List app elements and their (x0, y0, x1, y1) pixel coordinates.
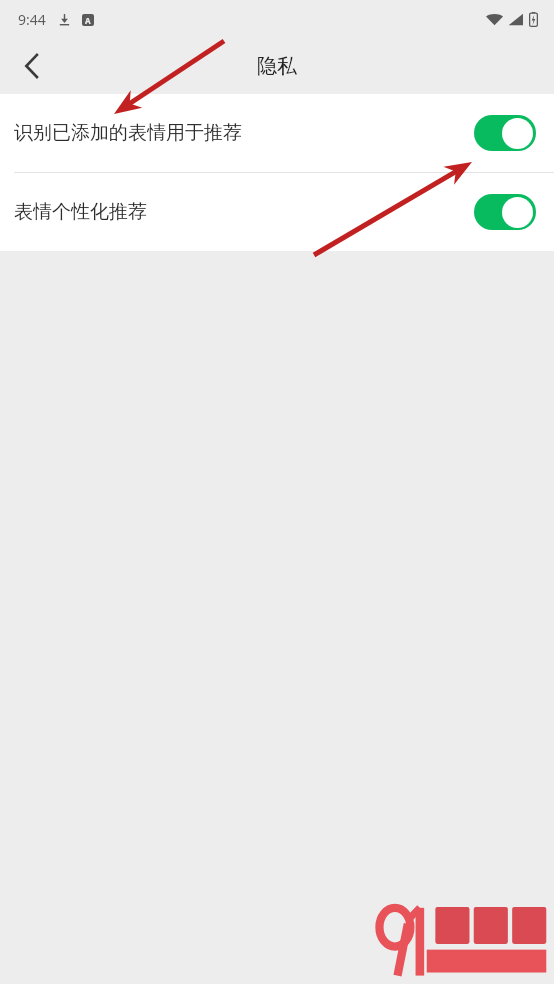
button[interactable]: Toggle (474, 115, 536, 151)
staticText: 隐私 (257, 54, 297, 79)
button[interactable]: Back (8, 43, 54, 89)
staticText: A (85, 15, 91, 26)
staticText: 表情个性化推荐 (14, 200, 462, 224)
staticText: 9:44 (18, 10, 46, 29)
button[interactable]: Toggle (474, 194, 536, 230)
button[interactable]: 表情个性化推荐 (0, 173, 554, 251)
button[interactable]: 识别已添加的表情用于推荐 (0, 94, 554, 172)
staticText: 识别已添加的表情用于推荐 (14, 121, 462, 145)
